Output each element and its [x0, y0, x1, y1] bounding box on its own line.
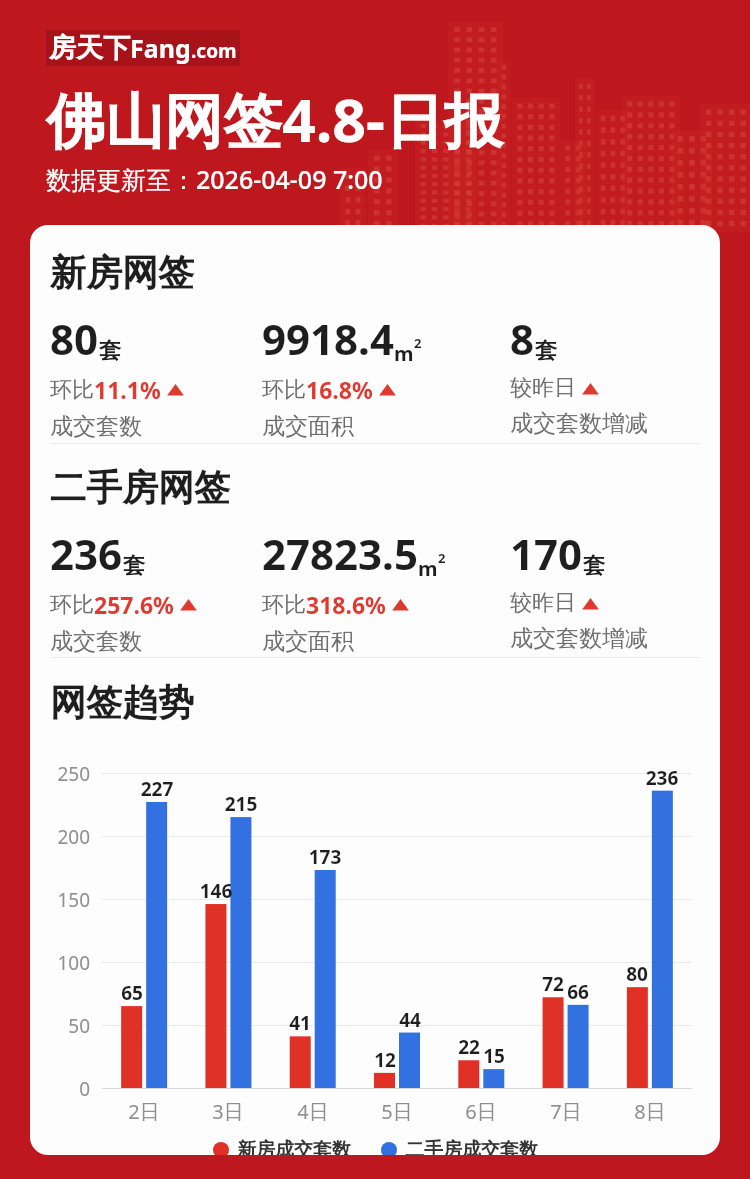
- staticText: 236: [640, 765, 684, 791]
- staticText: 215: [219, 791, 263, 817]
- staticText: 套: [583, 552, 605, 580]
- staticText: 成交套数增减: [510, 409, 648, 438]
- staticText: 环比: [50, 591, 94, 619]
- staticText: 佛山网签4.8-日报: [46, 79, 503, 160]
- staticText: 3日: [198, 1098, 258, 1125]
- staticText: m: [418, 555, 438, 582]
- staticText: 4日: [283, 1098, 343, 1125]
- staticText: 50: [38, 1013, 90, 1039]
- staticText: 22: [447, 1034, 491, 1060]
- staticText: 套: [535, 337, 557, 365]
- staticText: 12: [363, 1047, 407, 1073]
- staticText: 227: [135, 776, 179, 802]
- staticText: 数据更新至：2026-04-09 7:00: [46, 162, 383, 196]
- staticText: 新房网签: [50, 250, 194, 295]
- staticText: 100: [38, 950, 90, 976]
- staticText: 套: [99, 337, 121, 365]
- staticText: 新房成交套数: [237, 1138, 351, 1155]
- staticText: 236: [50, 525, 123, 582]
- staticText: 成交面积: [262, 412, 354, 441]
- staticText: 5日: [367, 1098, 427, 1125]
- staticText: 9918.4: [262, 310, 394, 367]
- staticText: 250: [38, 761, 90, 787]
- staticText: 8: [510, 310, 535, 367]
- staticText: 16.8%: [306, 374, 373, 405]
- staticText: 27823.5: [262, 525, 418, 582]
- button[interactable]: 二手房成交套数: [381, 1138, 538, 1155]
- staticText: Fang: [130, 31, 191, 65]
- button[interactable]: 房天下Fang.com: [49, 31, 237, 65]
- staticText: 较昨日: [510, 589, 576, 617]
- staticText: 成交套数: [50, 412, 142, 441]
- staticText: 41: [278, 1010, 322, 1036]
- staticText: 257.6%: [94, 589, 174, 620]
- staticText: 二手房网签: [50, 465, 230, 510]
- staticText: 80: [615, 961, 659, 987]
- staticText: 66: [556, 979, 600, 1005]
- staticText: 环比: [262, 376, 306, 404]
- staticText: m: [394, 340, 414, 367]
- staticText: 套: [123, 552, 145, 580]
- staticText: 二手房成交套数: [405, 1138, 538, 1155]
- staticText: 318.6%: [306, 589, 386, 620]
- staticText: 环比: [50, 376, 94, 404]
- staticText: 7日: [536, 1098, 596, 1125]
- staticText: 6日: [451, 1098, 511, 1125]
- staticText: 150: [38, 887, 90, 913]
- staticText: 房天下: [49, 31, 130, 65]
- staticText: 8日: [620, 1098, 680, 1125]
- staticText: 80: [50, 310, 99, 367]
- staticText: 44: [388, 1007, 432, 1033]
- staticText: .com: [191, 38, 237, 64]
- staticText: 170: [510, 525, 583, 582]
- staticText: 2: [438, 549, 446, 567]
- staticText: 成交面积: [262, 627, 354, 656]
- staticText: 较昨日: [510, 374, 576, 402]
- staticText: 146: [194, 878, 238, 904]
- staticText: 0: [38, 1076, 90, 1102]
- staticText: 2日: [114, 1098, 174, 1125]
- staticText: 15: [472, 1043, 516, 1069]
- button[interactable]: 新房成交套数: [213, 1138, 351, 1155]
- staticText: 72: [531, 971, 575, 997]
- staticText: 200: [38, 824, 90, 850]
- staticText: 环比: [262, 591, 306, 619]
- staticText: 成交套数: [50, 627, 142, 656]
- staticText: 2: [414, 334, 422, 352]
- staticText: 网签趋势: [50, 680, 194, 725]
- staticText: 173: [303, 844, 347, 870]
- staticText: 11.1%: [94, 374, 161, 405]
- staticText: 成交套数增减: [510, 624, 648, 653]
- staticText: 65: [110, 980, 154, 1006]
